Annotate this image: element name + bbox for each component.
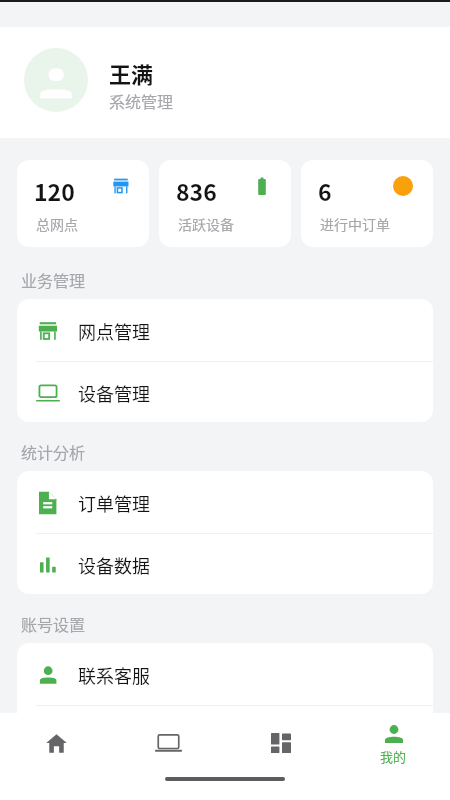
staticText: 订单管理 [78,490,150,516]
staticText: 系统管理 [109,89,174,112]
staticText: 设备数据 [78,552,150,578]
staticText: 进行中订单 [320,214,390,234]
button[interactable]: 120 [17,160,149,247]
button[interactable]: 6 [301,160,433,247]
staticText: 王满 [109,57,154,89]
button[interactable]: 836 [159,160,291,247]
button[interactable]: 设备管理 [17,362,433,422]
staticText: 网点管理 [78,318,150,344]
staticText: 总网点 [36,214,78,234]
staticText: 统计分析 [21,440,86,463]
button[interactable]: Dashboard [224,713,337,773]
button[interactable]: Devices [112,713,224,773]
button[interactable]: 订单管理 [17,471,433,533]
staticText: 我的 [380,747,407,766]
staticText: 联系客服 [78,662,150,688]
staticText: 账号设置 [21,612,86,635]
staticText: 836 [176,174,217,207]
button[interactable]: 网点管理 [17,299,433,361]
staticText: 6 [318,174,332,207]
staticText: 业务管理 [21,268,86,291]
button[interactable]: 我的 [337,713,450,773]
button[interactable]: 联系客服 [17,643,433,705]
button[interactable]: 关于我们 [17,706,433,766]
button[interactable]: Home [0,713,112,773]
staticText: 设备管理 [78,380,150,406]
staticText: 120 [34,174,75,207]
button[interactable]: 设备数据 [17,534,433,594]
staticText: 活跃设备 [178,214,234,234]
